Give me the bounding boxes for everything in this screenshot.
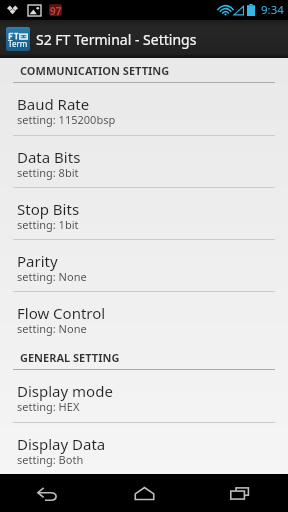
staticText: setting: 1bit	[17, 217, 79, 232]
staticText: setting: HEX	[17, 399, 80, 414]
staticText: Term	[8, 38, 28, 49]
staticText: setting: 8bit	[17, 165, 79, 180]
staticText: COMMUNICATION SETTING	[20, 63, 170, 78]
staticText: S2 FT Terminal - Settings	[36, 30, 197, 49]
button[interactable]: Home	[96, 474, 192, 512]
staticText: Stop Bits	[17, 199, 80, 219]
staticText: Parity	[17, 251, 58, 271]
staticText: Flow Control	[17, 303, 106, 323]
staticText: setting: None	[17, 321, 87, 336]
staticText: GENERAL SETTING	[20, 350, 120, 365]
button[interactable]: Flow Control	[0, 292, 288, 344]
button[interactable]: Baud Rate	[0, 83, 288, 136]
button[interactable]: Display Data	[0, 423, 288, 474]
staticText: setting: Both	[17, 452, 84, 467]
staticText: Display Data	[17, 434, 106, 454]
button[interactable]: Data Bits	[0, 136, 288, 188]
button[interactable]: Recents	[192, 474, 288, 512]
button[interactable]: Stop Bits	[0, 188, 288, 240]
staticText: 97	[50, 4, 62, 16]
staticText: setting: None	[17, 269, 87, 284]
staticText: 9:34	[261, 2, 284, 18]
button[interactable]: Display mode	[0, 370, 288, 423]
staticText: setting: 115200bsp	[17, 112, 116, 127]
staticText: Display mode	[17, 381, 113, 401]
button[interactable]: Parity	[0, 240, 288, 292]
staticText: Baud Rate	[17, 94, 90, 114]
button[interactable]: Back	[0, 474, 96, 512]
staticText: Data Bits	[17, 147, 81, 167]
